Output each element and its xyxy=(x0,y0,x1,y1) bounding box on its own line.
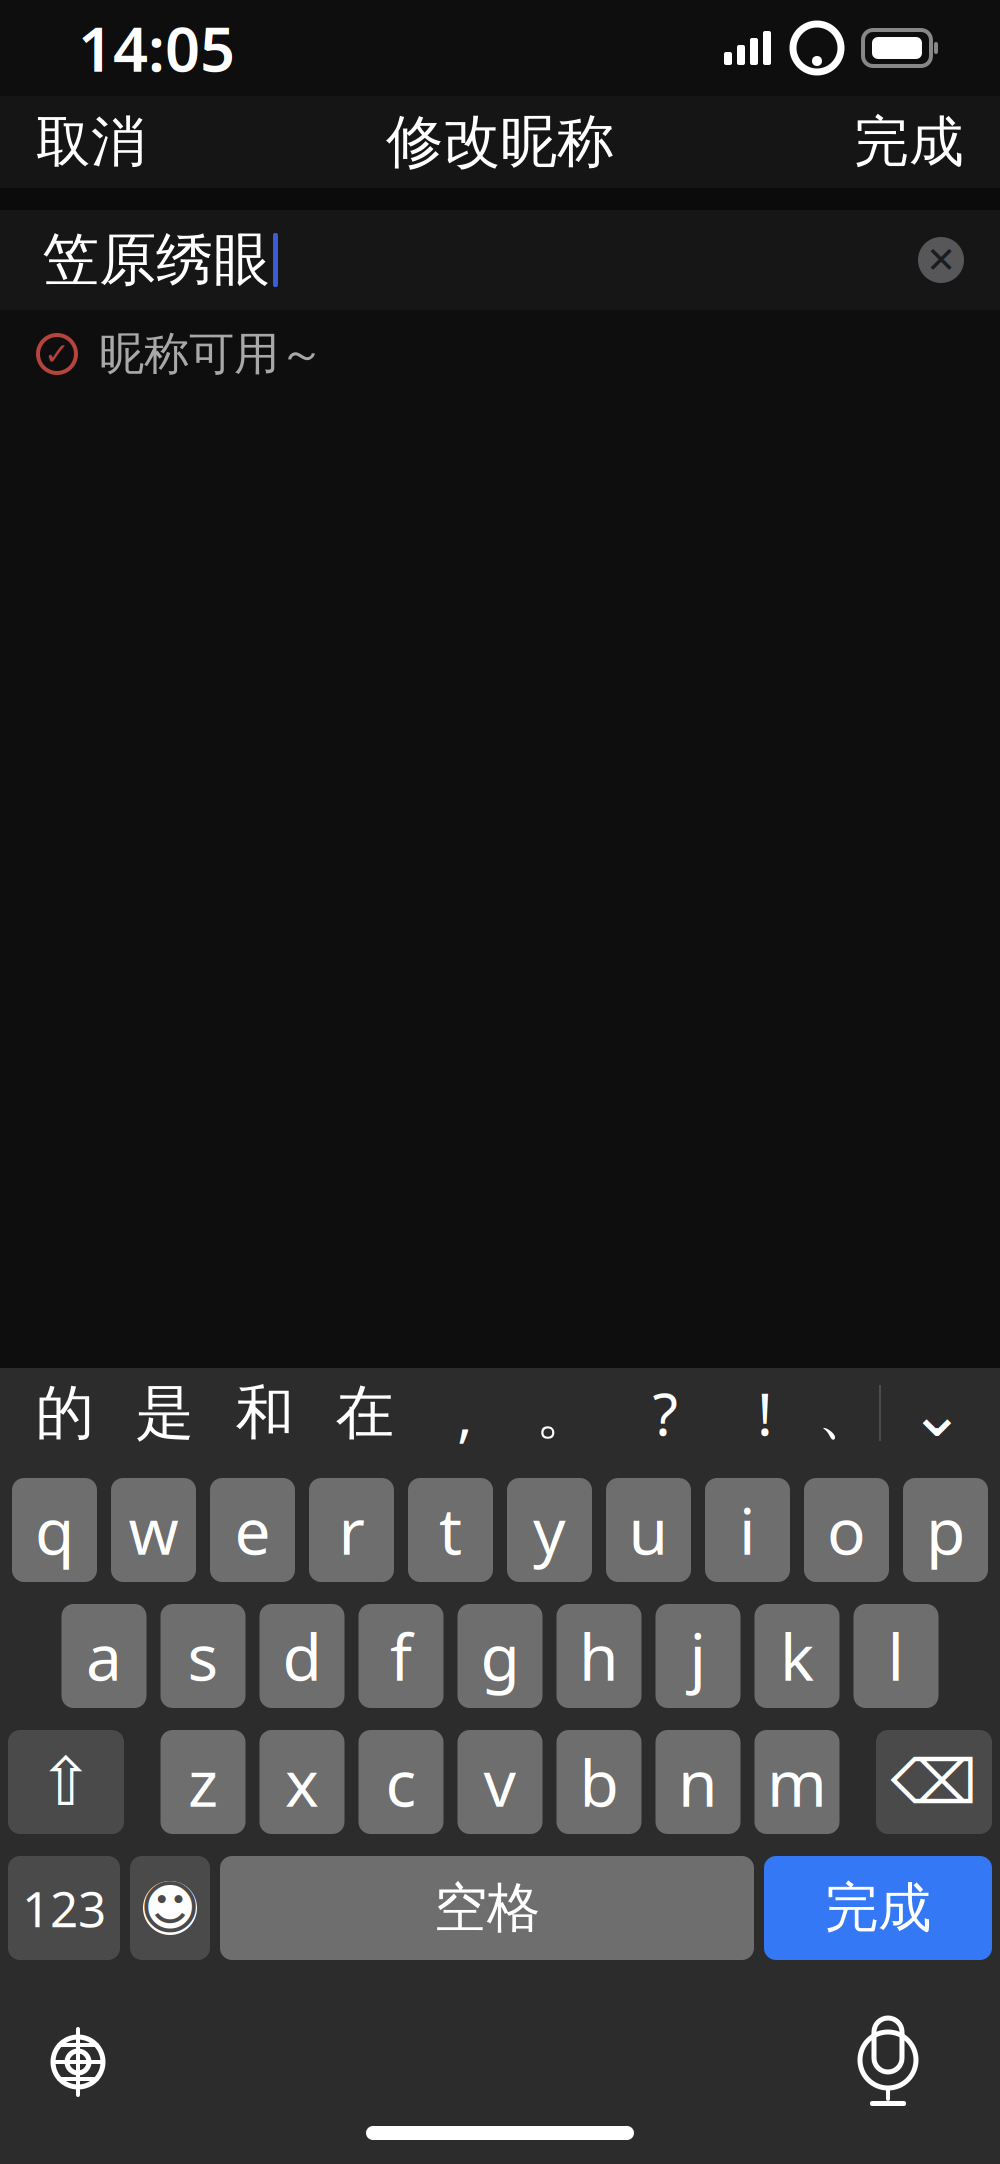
staticText: u xyxy=(628,1487,668,1572)
staticText: 空格 xyxy=(434,1875,540,1941)
staticText: 14:05 xyxy=(78,7,235,89)
staticText: d xyxy=(282,1613,321,1698)
staticText: 和 xyxy=(235,1377,294,1449)
button[interactable]: r xyxy=(309,1478,394,1582)
staticText: ✕ xyxy=(926,240,956,280)
button[interactable]: k xyxy=(754,1604,839,1708)
button[interactable]: f xyxy=(358,1604,443,1708)
staticText: p xyxy=(926,1487,965,1572)
staticText: ? xyxy=(652,1374,677,1452)
staticText: 笠原绣眼 xyxy=(42,225,270,295)
staticText: 昵称可用～ xyxy=(99,326,324,382)
staticText: k xyxy=(780,1613,814,1698)
button[interactable]: 大写 xyxy=(8,1730,124,1834)
button[interactable]: x xyxy=(259,1730,344,1834)
button[interactable]: u xyxy=(606,1478,691,1582)
staticText: t xyxy=(439,1487,462,1572)
staticText: 。 xyxy=(535,1377,594,1449)
staticText: , xyxy=(457,1374,473,1452)
button[interactable]: o xyxy=(804,1478,889,1582)
button[interactable]: h xyxy=(556,1604,641,1708)
button[interactable]: j xyxy=(655,1604,740,1708)
button[interactable]: ! xyxy=(715,1373,815,1453)
button[interactable]: , xyxy=(415,1373,515,1453)
staticText: m xyxy=(767,1739,827,1824)
button[interactable]: b xyxy=(556,1730,641,1834)
button[interactable]: z xyxy=(160,1730,245,1834)
staticText: 是 xyxy=(135,1377,194,1449)
staticText: z xyxy=(188,1739,218,1824)
button[interactable]: 表情 xyxy=(130,1856,210,1960)
staticText: j xyxy=(689,1613,706,1698)
staticText: w xyxy=(128,1487,178,1572)
staticText: 完成 xyxy=(825,1875,931,1941)
staticText: ☺ xyxy=(139,1875,200,1941)
button[interactable]: 完成 xyxy=(826,88,992,195)
button[interactable]: g xyxy=(457,1604,542,1708)
button[interactable]: ? xyxy=(615,1373,715,1453)
staticText: e xyxy=(234,1487,270,1572)
button[interactable]: 清除 xyxy=(902,221,980,299)
button[interactable]: 在 xyxy=(315,1373,415,1453)
staticText: 123 xyxy=(22,1875,106,1941)
staticText: ⇧ xyxy=(38,1744,94,1820)
button[interactable]: a xyxy=(61,1604,146,1708)
staticText: f xyxy=(390,1613,412,1698)
button[interactable]: 、 xyxy=(815,1373,879,1453)
staticText: ⌄ xyxy=(909,1375,965,1451)
staticText: 、 xyxy=(817,1377,876,1449)
button[interactable]: y xyxy=(507,1478,592,1582)
staticText: c xyxy=(385,1739,416,1824)
button[interactable]: 收起键盘 xyxy=(881,1373,993,1453)
button[interactable]: n xyxy=(655,1730,740,1834)
staticText: 修改昵称 xyxy=(386,107,614,177)
staticText: q xyxy=(35,1487,74,1572)
staticText: 在 xyxy=(335,1377,394,1449)
staticText: v xyxy=(483,1739,516,1824)
button[interactable]: c xyxy=(358,1730,443,1834)
staticText: a xyxy=(86,1613,122,1698)
button[interactable]: 完成 xyxy=(764,1856,992,1960)
staticText: x xyxy=(285,1739,319,1824)
staticText: ⌫ xyxy=(890,1747,977,1817)
button[interactable]: 空格 xyxy=(220,1856,754,1960)
button[interactable]: d xyxy=(259,1604,344,1708)
staticText: b xyxy=(579,1739,618,1824)
staticText: i xyxy=(739,1487,756,1572)
staticText: y xyxy=(533,1487,566,1572)
staticText: o xyxy=(827,1487,866,1572)
staticText: h xyxy=(579,1613,619,1698)
staticText: ✓ xyxy=(44,337,70,371)
button[interactable]: q xyxy=(12,1478,97,1582)
button[interactable]: v xyxy=(457,1730,542,1834)
staticText: 完成 xyxy=(854,108,964,175)
button[interactable]: 和 xyxy=(215,1373,315,1453)
button[interactable]: t xyxy=(408,1478,493,1582)
staticText: l xyxy=(887,1613,904,1698)
staticText: r xyxy=(338,1487,364,1572)
button[interactable]: s xyxy=(160,1604,245,1708)
button[interactable]: 123 xyxy=(8,1856,120,1960)
button[interactable]: i xyxy=(705,1478,790,1582)
button[interactable]: p xyxy=(903,1478,988,1582)
button[interactable]: 语音输入 xyxy=(828,2007,948,2117)
button[interactable]: 切换键盘 xyxy=(18,2007,138,2117)
button[interactable]: 是 xyxy=(115,1373,215,1453)
button[interactable]: m xyxy=(754,1730,839,1834)
staticText: 的 xyxy=(35,1377,94,1449)
button[interactable]: l xyxy=(853,1604,938,1708)
button[interactable]: e xyxy=(210,1478,295,1582)
button[interactable]: 取消 xyxy=(8,88,174,195)
button[interactable]: 。 xyxy=(515,1373,615,1453)
staticText: 取消 xyxy=(36,108,146,175)
button[interactable]: 删除 xyxy=(876,1730,992,1834)
staticText: ! xyxy=(757,1374,773,1452)
staticText: g xyxy=(480,1613,519,1698)
staticText: n xyxy=(678,1739,718,1824)
button[interactable]: 的 xyxy=(15,1373,115,1453)
staticText: s xyxy=(187,1613,218,1698)
button[interactable]: w xyxy=(111,1478,196,1582)
